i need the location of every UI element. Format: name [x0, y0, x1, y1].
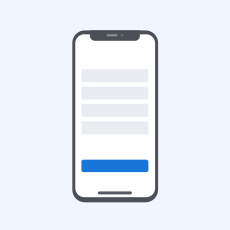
button[interactable]: Continue [81, 160, 148, 172]
